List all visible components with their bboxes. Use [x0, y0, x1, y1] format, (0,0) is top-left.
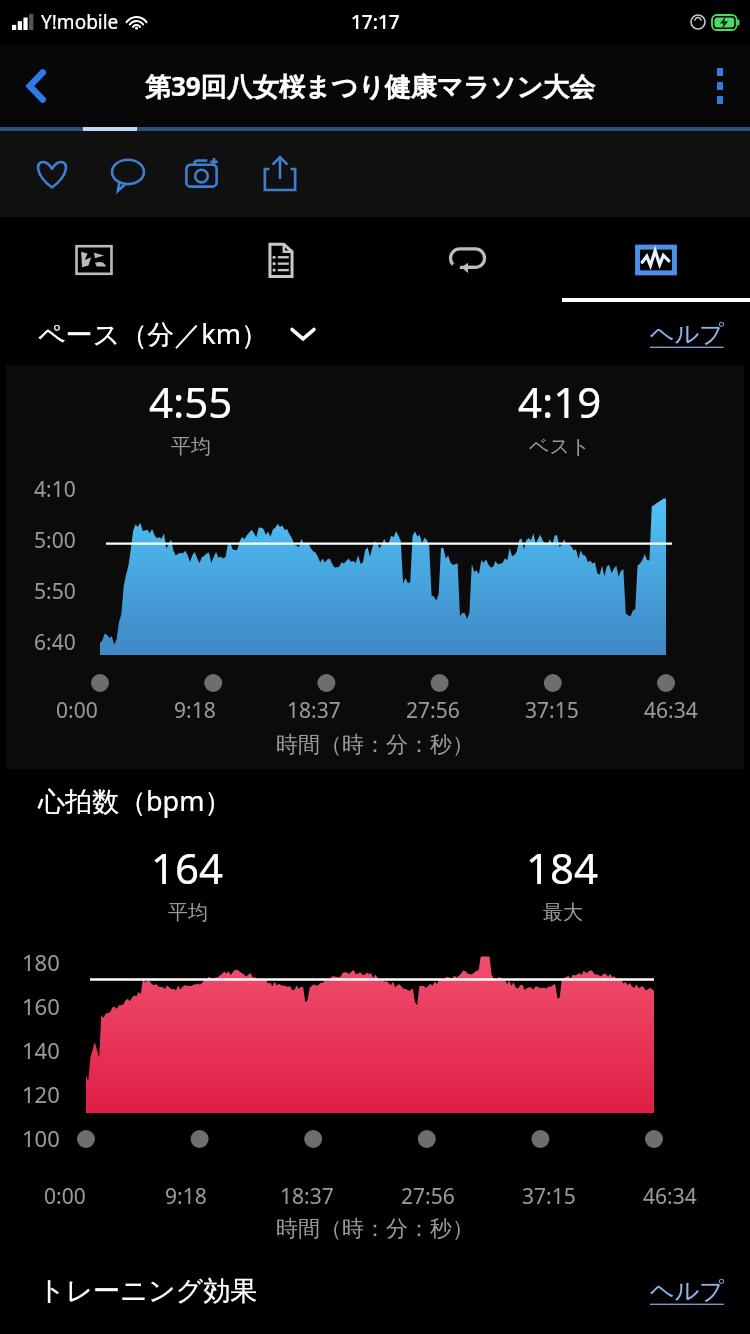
staticText: 180: [22, 947, 60, 977]
staticText: 18:37: [287, 696, 341, 725]
staticText: 最大: [543, 900, 583, 925]
staticText: ペース（分／km）: [38, 315, 268, 352]
button[interactable]: Like: [26, 148, 78, 200]
staticText: 5:50: [34, 577, 76, 606]
staticText: 4:55: [149, 373, 233, 430]
staticText: ヘルプ: [650, 1276, 724, 1306]
button[interactable]: Add photo: [178, 148, 230, 200]
staticText: 平均: [171, 434, 211, 459]
staticText: 17:17: [351, 9, 400, 35]
button[interactable]: ヘルプ: [644, 1268, 730, 1314]
staticText: 27:56: [406, 696, 460, 725]
button[interactable]: Share: [254, 148, 306, 200]
staticText: 37:15: [525, 696, 579, 725]
staticText: 18:37: [280, 1182, 334, 1211]
staticText: 時間（時：分：秒）: [276, 1215, 474, 1243]
staticText: 160: [22, 991, 60, 1021]
staticText: 6:40: [34, 628, 76, 657]
staticText: 9:18: [165, 1182, 207, 1211]
button[interactable]: Comment: [102, 148, 154, 200]
button[interactable]: Details: [187, 217, 374, 302]
button[interactable]: ヘルプ: [644, 311, 730, 357]
staticText: 9:18: [174, 696, 216, 725]
button[interactable]: Charts: [562, 217, 750, 302]
button[interactable]: Laps: [374, 217, 562, 302]
staticText: 37:15: [522, 1182, 576, 1211]
staticText: 120: [22, 1079, 60, 1109]
staticText: トレーニング効果: [38, 1274, 258, 1308]
staticText: 164: [151, 839, 224, 896]
staticText: 4:10: [34, 475, 76, 504]
staticText: 27:56: [401, 1182, 455, 1211]
staticText: 0:00: [44, 1182, 86, 1211]
staticText: 0:00: [56, 696, 98, 725]
button[interactable]: Back: [0, 44, 74, 127]
button[interactable]: Change metric: [286, 317, 320, 351]
staticText: 100: [22, 1123, 60, 1153]
staticText: 5:00: [34, 526, 76, 555]
button[interactable]: More options: [690, 44, 750, 127]
staticText: 184: [526, 839, 599, 896]
staticText: 46:34: [643, 1182, 697, 1211]
staticText: 46:34: [644, 696, 698, 725]
staticText: 平均: [168, 900, 208, 925]
staticText: 時間（時：分：秒）: [276, 731, 474, 759]
staticText: ヘルプ: [650, 319, 724, 349]
staticText: 心拍数（bpm）: [38, 782, 232, 819]
button[interactable]: Map: [0, 217, 187, 302]
staticText: ベスト: [529, 434, 591, 459]
staticText: Y!mobile: [41, 9, 119, 35]
staticText: 第39回八女桜まつり健康マラソン大会: [145, 68, 596, 104]
staticText: 4:19: [518, 373, 602, 430]
staticText: 140: [22, 1035, 60, 1065]
